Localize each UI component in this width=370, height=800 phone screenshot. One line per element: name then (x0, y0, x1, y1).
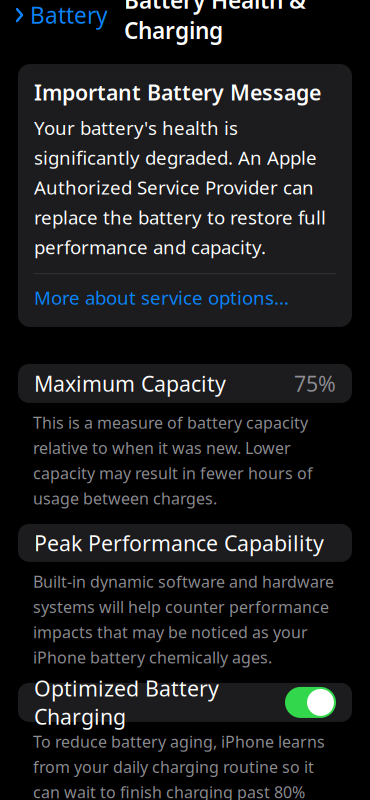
staticText: Peak Performance Capability (34, 529, 324, 557)
button[interactable]: Optimized Battery Charging (18, 683, 352, 722)
staticText: This is a measure of battery capacity re… (33, 412, 313, 509)
button[interactable]: More about service options... (34, 274, 336, 321)
staticText: Your battery's health is significantly d… (34, 115, 326, 259)
staticText: Maximum Capacity (34, 369, 226, 398)
staticText: Battery Health & Charging (124, 0, 306, 45)
staticText: Built-in dynamic software and hardware s… (33, 571, 334, 668)
staticText: Battery (30, 0, 108, 30)
staticText: Important Battery Message (34, 78, 321, 106)
staticText: To reduce battery aging, iPhone learns f… (33, 731, 325, 800)
staticText: Optimized Battery Charging (34, 674, 219, 731)
button[interactable]: Peak Performance Capability (18, 524, 352, 562)
staticText: 75% (294, 369, 336, 398)
staticText: More about service options... (34, 285, 289, 310)
button[interactable]: Maximum Capacity (18, 364, 352, 403)
button[interactable]: Battery (12, 0, 110, 36)
